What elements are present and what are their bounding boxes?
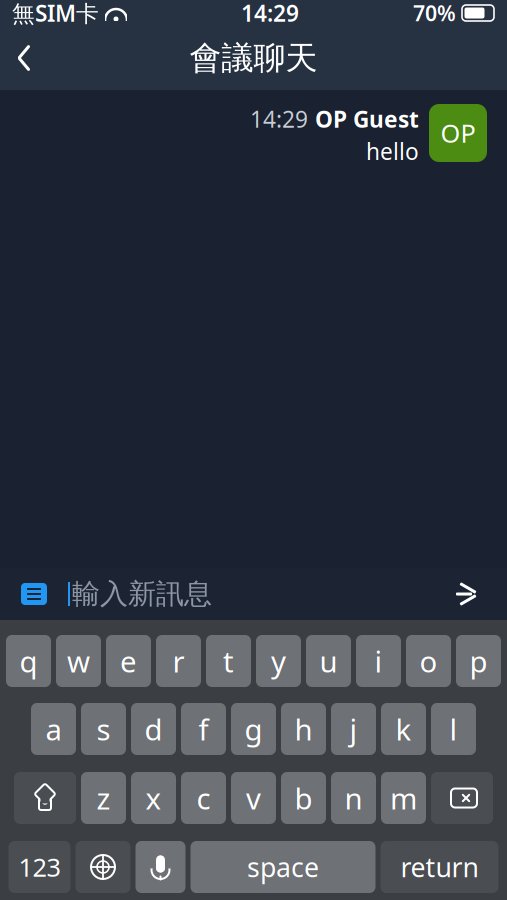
staticText: f [198,709,208,748]
staticText: j [349,709,357,748]
button[interactable]: Next keyboard [75,841,130,893]
button[interactable]: Back [0,32,48,84]
staticText: t [223,641,234,680]
button[interactable]: r [156,635,201,687]
button[interactable]: Delete [431,772,493,824]
button[interactable]: c [181,772,226,824]
button[interactable]: w [56,635,101,687]
button[interactable]: d [131,703,176,755]
staticText: 14:29 [250,104,308,134]
button[interactable]: h [281,703,326,755]
button[interactable]: z [81,772,126,824]
staticText: p [469,641,487,680]
staticText: y [271,641,286,680]
staticText: n [344,778,362,817]
button[interactable]: o [406,635,451,687]
staticText: o [419,641,437,680]
button[interactable]: Shift [14,772,76,824]
staticText: e [120,641,137,680]
staticText: s [96,709,110,748]
button[interactable]: return [380,841,498,893]
staticText: m [390,778,417,817]
staticText: u [319,641,337,680]
button[interactable]: i [356,635,401,687]
button[interactable]: Send [447,574,493,614]
staticText: x [145,778,161,817]
button[interactable]: Messages [14,574,54,614]
button[interactable]: Dictation [135,841,185,893]
button[interactable]: b [281,772,326,824]
button[interactable]: k [381,703,426,755]
button[interactable]: 123 [8,841,70,893]
staticText: v [246,778,261,817]
staticText: OP Guest [315,104,419,134]
button[interactable]: g [231,703,276,755]
button[interactable]: y [256,635,301,687]
staticText: a [45,709,61,748]
button[interactable]: p [456,635,501,687]
button[interactable]: n [331,772,376,824]
button[interactable]: f [181,703,226,755]
staticText: b [294,778,312,817]
button[interactable]: j [331,703,376,755]
staticText: k [395,709,411,748]
staticText: w [67,641,90,680]
staticText: q [19,641,37,680]
button[interactable]: space [190,841,375,893]
button[interactable]: v [231,772,276,824]
staticText: g [244,709,262,748]
staticText: hello [366,136,419,166]
button[interactable]: q [6,635,51,687]
staticText: space [247,849,319,885]
staticText: 輸入新訊息 [72,577,212,611]
staticText: r [172,641,184,680]
button[interactable]: u [306,635,351,687]
staticText: l [449,709,457,748]
staticText: h [294,709,312,748]
staticText: return [400,849,478,885]
button[interactable]: l [431,703,476,755]
staticText: z [96,778,110,817]
staticText: i [374,641,382,680]
staticText: 123 [18,850,60,884]
staticText: 會議聊天 [189,38,317,78]
button[interactable]: t [206,635,251,687]
button[interactable]: a [31,703,76,755]
button[interactable]: x [131,772,176,824]
button[interactable]: m [381,772,426,824]
staticText: 70% [413,0,456,27]
staticText: 無SIM卡 [12,0,99,28]
button[interactable]: e [106,635,151,687]
staticText: 14:29 [241,0,299,28]
button[interactable]: s [81,703,126,755]
staticText: OP [440,116,475,150]
staticText: c [196,778,210,817]
staticText: d [144,709,162,748]
